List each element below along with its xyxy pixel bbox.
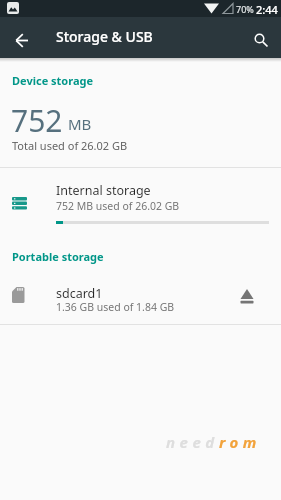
staticText: 70%: [236, 3, 254, 15]
staticText: MB: [68, 114, 92, 134]
staticText: 752: [11, 100, 63, 141]
staticText: need: [166, 432, 219, 452]
staticText: 2:44: [256, 2, 278, 17]
staticText: Storage & USB: [56, 27, 153, 46]
staticText: Portable storage: [12, 249, 104, 264]
staticText: 1.36 GB used of 1.84 GB: [56, 300, 175, 314]
button[interactable]: [8, 31, 40, 51]
staticText: Total used of 26.02 GB: [12, 138, 128, 153]
staticText: sdcard1: [56, 285, 103, 302]
staticText: Internal storage: [56, 182, 151, 199]
staticText: 752 MB used of 26.02 GB: [56, 199, 180, 213]
staticText: rom: [219, 432, 261, 452]
button[interactable]: [236, 287, 258, 309]
button[interactable]: Internal storage: [0, 168, 281, 232]
button[interactable]: sdcard1: [0, 268, 281, 325]
button[interactable]: [248, 28, 274, 52]
staticText: Device storage: [12, 73, 94, 88]
